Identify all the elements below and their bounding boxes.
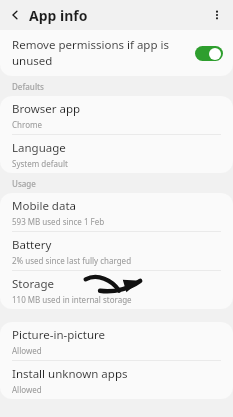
- staticText: Language: [12, 140, 66, 156]
- button[interactable]: Storage: [0, 271, 233, 309]
- staticText: Picture-in-picture: [12, 327, 106, 343]
- staticText: Install unknown apps: [12, 366, 128, 382]
- button[interactable]: Back: [4, 4, 26, 26]
- staticText: Remove permissions if app is unused: [12, 37, 189, 69]
- button[interactable]: Browser app: [0, 96, 233, 134]
- staticText: Allowed: [12, 345, 42, 356]
- button[interactable]: More options: [206, 4, 228, 26]
- staticText: App info: [29, 6, 88, 25]
- staticText: Chrome: [12, 119, 42, 130]
- button[interactable]: Battery: [0, 232, 233, 270]
- staticText: Battery: [12, 237, 52, 253]
- button[interactable]: Picture-in-picture: [0, 322, 233, 360]
- staticText: Storage: [12, 276, 54, 292]
- staticText: 2% used since last fully charged: [12, 255, 132, 266]
- staticText: Browser app: [12, 101, 81, 117]
- button[interactable]: Language: [0, 135, 233, 173]
- staticText: 593 MB used since 1 Feb: [12, 216, 105, 227]
- staticText: Allowed: [12, 384, 42, 395]
- staticText: Usage: [12, 178, 36, 189]
- button[interactable]: Remove permissions toggle: [195, 46, 223, 61]
- staticText: System default: [12, 158, 68, 169]
- staticText: 110 MB used in internal storage: [12, 294, 132, 305]
- button[interactable]: Remove permissions if app is unused: [0, 30, 233, 76]
- button[interactable]: Install unknown apps: [0, 361, 233, 399]
- staticText: Defaults: [12, 81, 44, 92]
- button[interactable]: Mobile data: [0, 193, 233, 231]
- staticText: Mobile data: [12, 198, 76, 214]
